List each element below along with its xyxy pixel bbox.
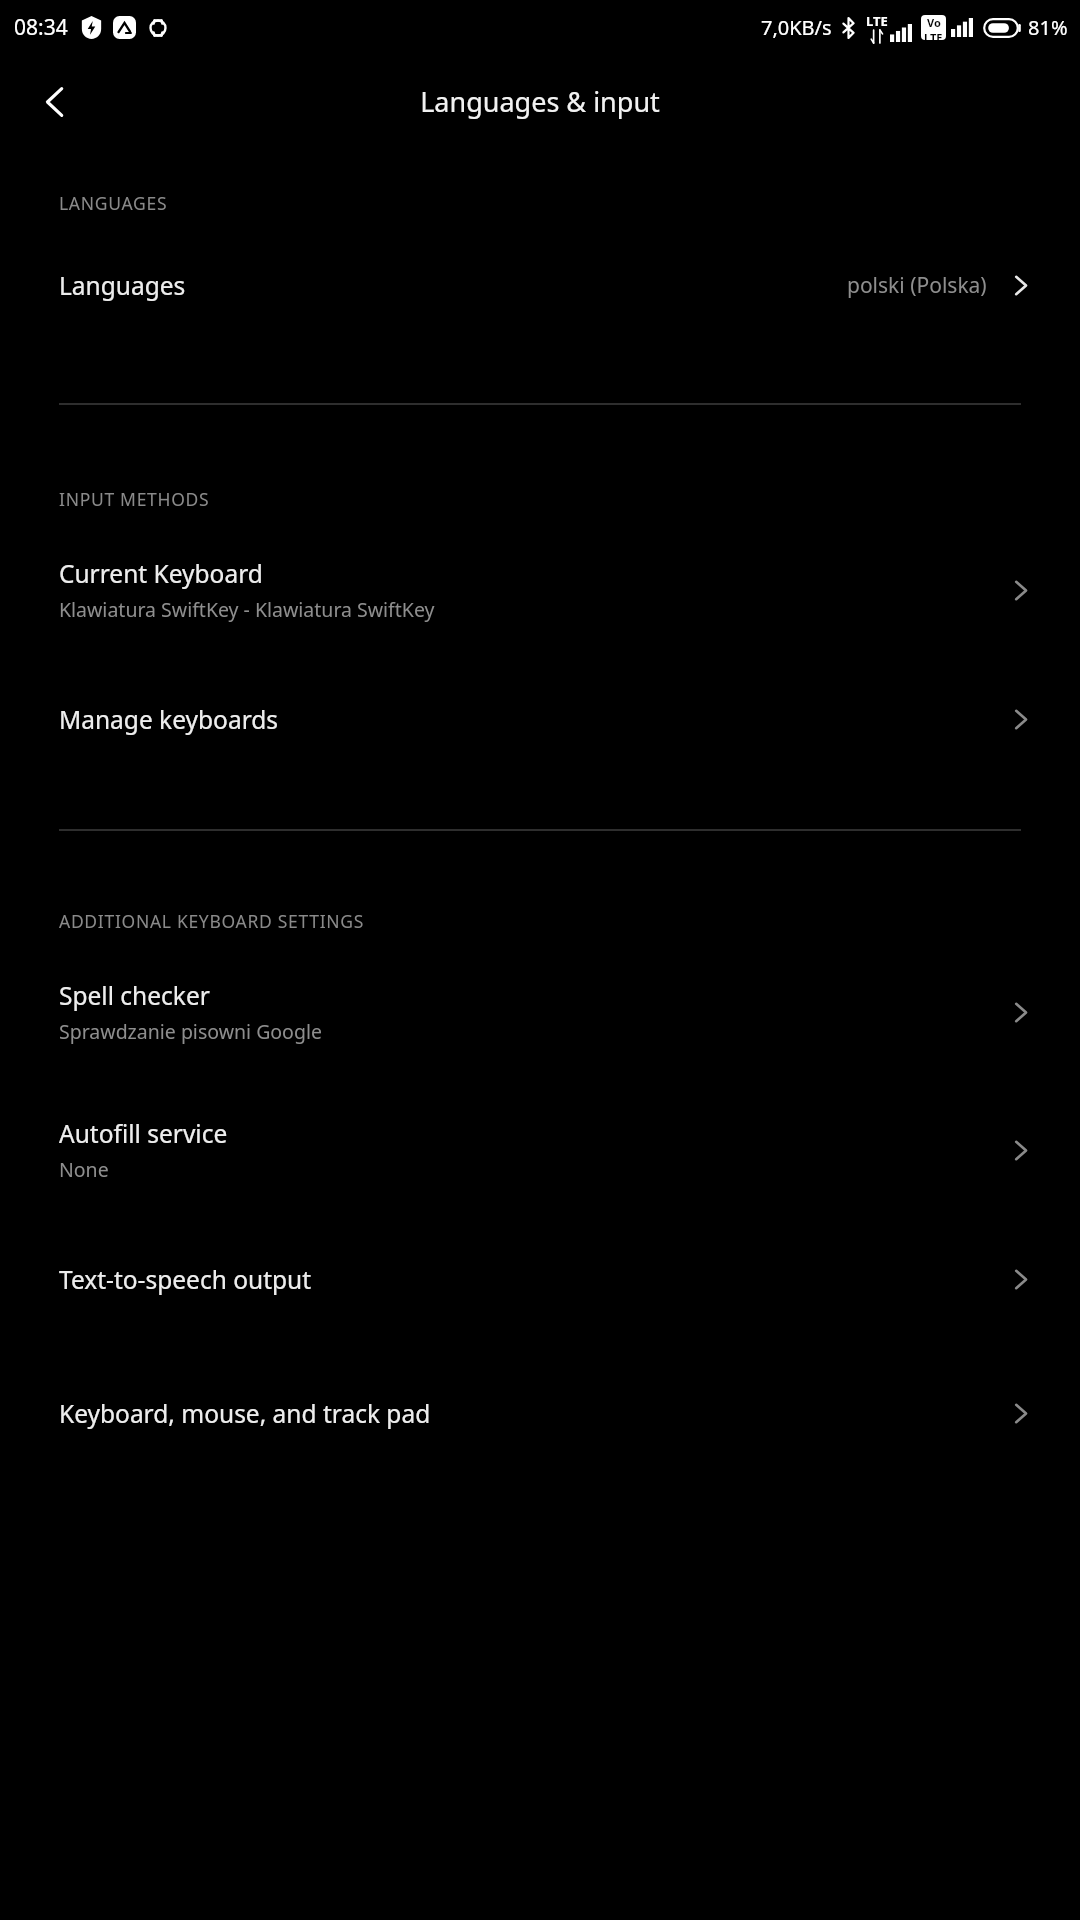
staticText: INPUT METHODS (59, 487, 1080, 511)
staticText: Text-to-speech output (59, 1263, 312, 1296)
staticText: 7,0KB/s (761, 14, 832, 41)
staticText: 08:34 (14, 13, 68, 42)
button[interactable]: Spell checker (0, 957, 1080, 1067)
staticText: Autofill service (59, 1117, 228, 1150)
staticText: Sprawdzanie pisowni Google (59, 1018, 322, 1045)
staticText: Languages & input (420, 83, 660, 120)
staticText: ADDITIONAL KEYBOARD SETTINGS (59, 909, 1080, 933)
staticText: LTE (866, 12, 888, 30)
staticText: LTE (924, 30, 943, 40)
button[interactable]: Manage keyboards (0, 673, 1080, 765)
button[interactable]: Current Keyboard (0, 535, 1080, 645)
staticText: Spell checker (59, 979, 210, 1012)
staticText: Vo (927, 15, 941, 30)
staticText: 81% (1028, 14, 1068, 41)
staticText: Current Keyboard (59, 557, 263, 590)
staticText: Klawiatura SwiftKey - Klawiatura SwiftKe… (59, 596, 435, 623)
staticText: Keyboard, mouse, and track pad (59, 1397, 431, 1430)
button[interactable]: Text-to-speech output (0, 1233, 1080, 1325)
staticText: polski (Polska) (847, 271, 987, 300)
staticText: Manage keyboards (59, 703, 279, 736)
button[interactable]: Autofill service (0, 1095, 1080, 1205)
button[interactable]: Keyboard, mouse, and track pad (0, 1367, 1080, 1459)
button[interactable]: Languages (0, 239, 1080, 331)
staticText: LANGUAGES (59, 191, 1080, 215)
staticText: Languages (59, 269, 186, 302)
button[interactable]: Back (26, 73, 84, 131)
staticText: None (59, 1156, 109, 1183)
